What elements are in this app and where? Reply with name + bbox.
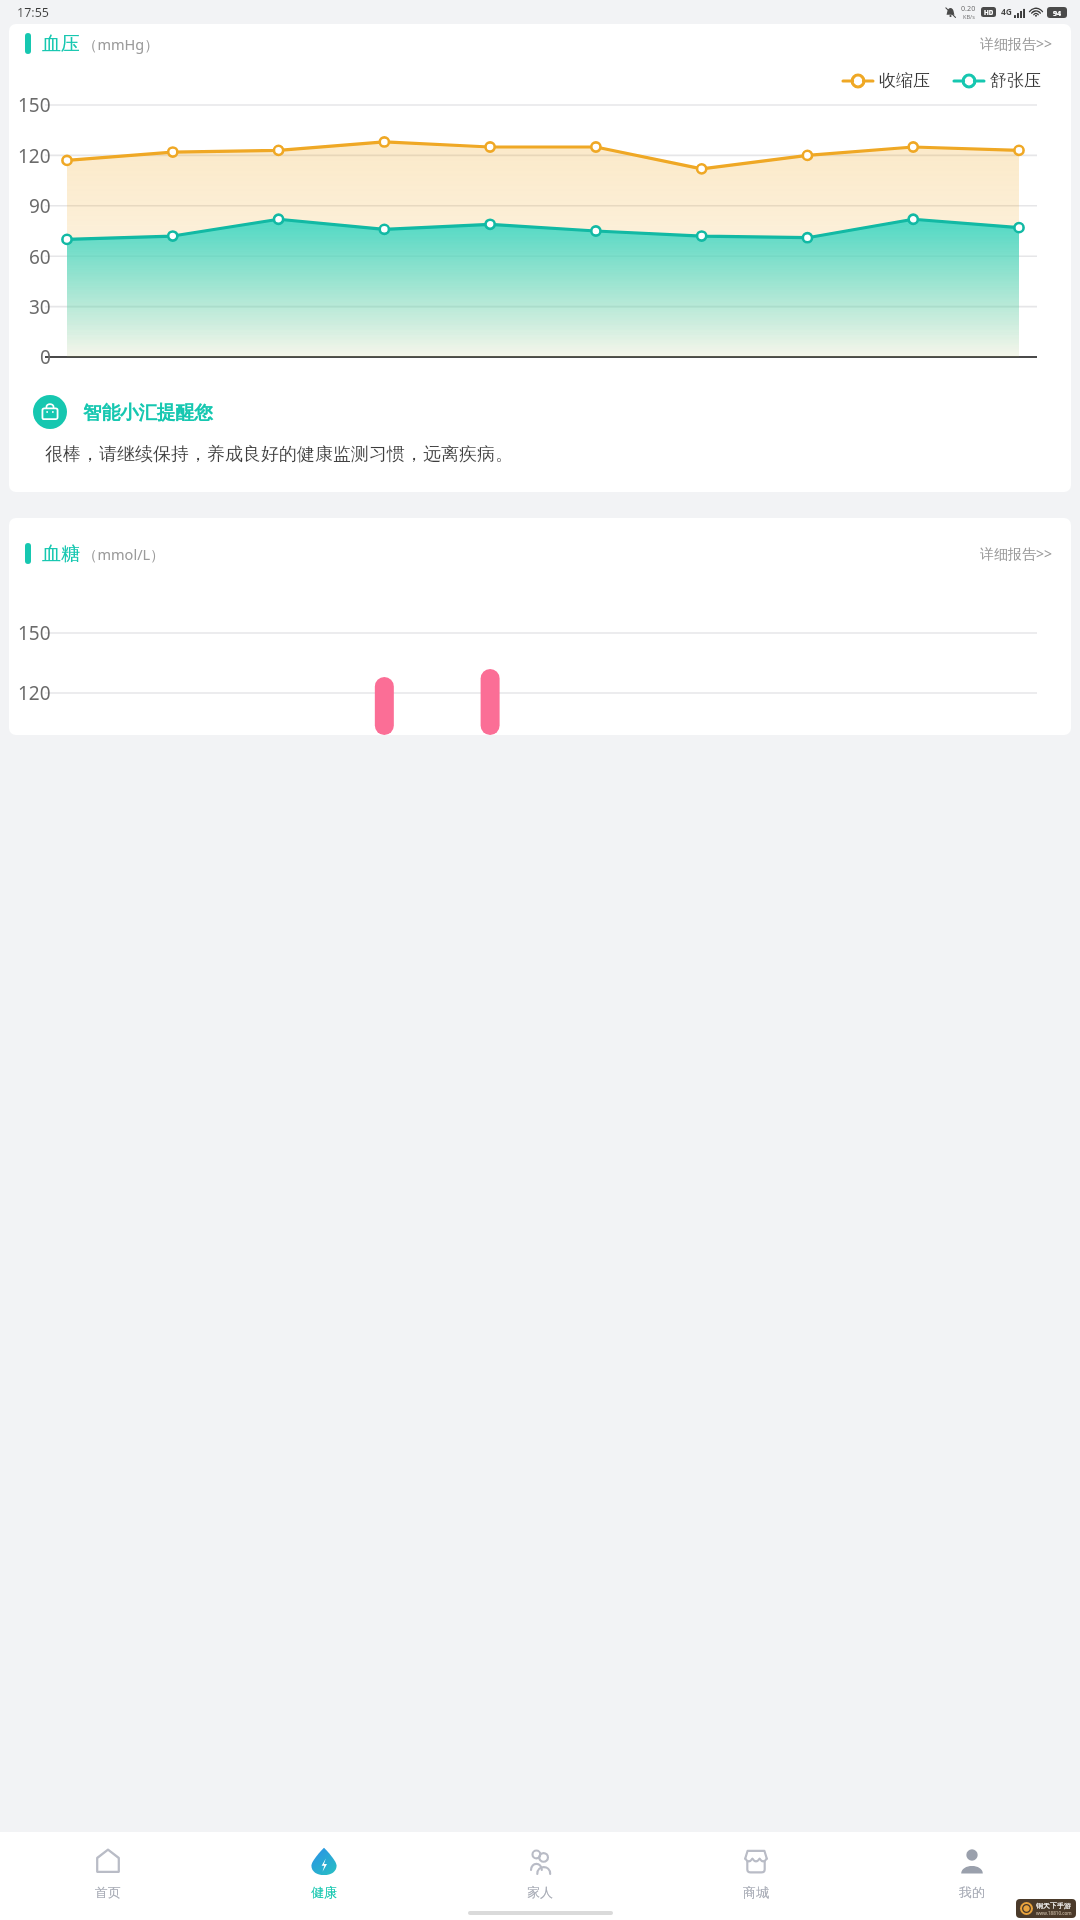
staticText: 90: [29, 193, 51, 219]
staticText: 17:55: [17, 4, 49, 21]
staticText: 铜天下手游: [1036, 1901, 1071, 1910]
button[interactable]: 详细报告>>: [976, 540, 1057, 567]
staticText: HD: [984, 8, 994, 16]
staticText: （mmol/L）: [83, 544, 165, 564]
staticText: 血压: [42, 32, 80, 56]
staticText: 4G: [1001, 6, 1013, 18]
staticText: 很棒，请继续保持，养成良好的健康监测习惯，远离疾病。: [45, 443, 513, 466]
staticText: 0: [40, 344, 51, 370]
staticText: 收缩压: [879, 70, 930, 91]
staticText: 60: [29, 244, 51, 270]
staticText: 120: [18, 680, 51, 706]
button[interactable]: 我的: [864, 1832, 1080, 1920]
button[interactable]: 商城: [648, 1832, 864, 1920]
button[interactable]: 家人: [432, 1832, 648, 1920]
button[interactable]: 详细报告>>: [976, 30, 1057, 57]
staticText: 我的: [959, 1884, 985, 1900]
staticText: 详细报告>>: [980, 34, 1053, 53]
staticText: （mmHg）: [83, 34, 159, 54]
staticText: 详细报告>>: [980, 544, 1053, 563]
button[interactable]: 首页: [0, 1832, 216, 1920]
staticText: 150: [18, 620, 51, 646]
staticText: 舒张压: [990, 70, 1041, 91]
staticText: 血糖: [42, 542, 80, 566]
staticText: KB/s: [963, 13, 975, 21]
staticText: 120: [18, 143, 51, 169]
staticText: 家人: [527, 1884, 553, 1900]
staticText: 150: [18, 92, 51, 118]
staticText: 智能小汇提醒您: [83, 401, 213, 424]
staticText: 首页: [95, 1884, 121, 1900]
staticText: 0.20: [961, 3, 976, 13]
staticText: 30: [29, 294, 51, 320]
staticText: 商城: [743, 1884, 769, 1900]
button[interactable]: 健康: [216, 1832, 432, 1920]
staticText: 94: [1053, 8, 1062, 18]
staticText: 健康: [311, 1884, 337, 1900]
staticText: www.18810.com: [1036, 1910, 1072, 1916]
